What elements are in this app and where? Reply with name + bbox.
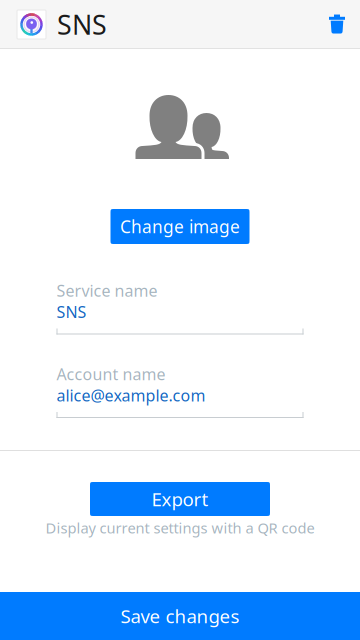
button[interactable]: Delete [315,0,360,47]
staticText: SNS [57,7,107,42]
staticText: Export [151,487,208,511]
staticText: Account name [56,363,165,385]
button[interactable]: SNS [0,6,107,42]
button[interactable]: Export [90,482,270,516]
staticText: SNS [56,301,86,322]
staticText: Change image [120,215,240,238]
staticText: Service name [56,280,157,301]
button[interactable]: Save changes [0,592,360,640]
staticText: alice@example.com [56,385,205,406]
staticText: Save changes [120,604,239,628]
staticText: Display current settings with a QR code [45,518,314,537]
button[interactable]: Change image [110,209,249,244]
